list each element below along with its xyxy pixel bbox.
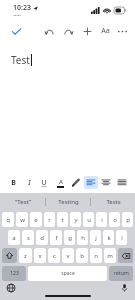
button[interactable]: y: [70, 212, 81, 227]
staticText: i: [101, 216, 103, 224]
staticText: x: [38, 252, 42, 260]
staticText: c: [53, 252, 56, 260]
staticText: A: [59, 178, 63, 186]
button[interactable]: k: [103, 230, 114, 245]
button[interactable]: Underline: [37, 176, 51, 189]
staticText: f: [55, 234, 58, 242]
staticText: U: [41, 178, 47, 188]
button[interactable]: space: [28, 266, 107, 281]
button[interactable]: r: [44, 212, 55, 227]
button[interactable]: Highlight: [68, 176, 82, 189]
button[interactable]: n: [90, 248, 102, 263]
staticText: Test: [11, 53, 30, 67]
staticText: Tests: [106, 198, 121, 206]
staticText: return: [114, 270, 129, 277]
button[interactable]: “Test”: [0, 193, 45, 210]
button[interactable]: Tests: [91, 193, 135, 210]
staticText: “Test”: [15, 198, 31, 206]
button[interactable]: List: [115, 176, 129, 189]
button[interactable]: h: [77, 230, 88, 245]
staticText: e: [34, 216, 38, 224]
button[interactable]: Text color: [53, 176, 67, 189]
button[interactable]: b: [76, 248, 88, 263]
button[interactable]: c: [48, 248, 60, 263]
button[interactable]: z: [19, 248, 32, 263]
button[interactable]: Insert: [79, 23, 95, 39]
staticText: s: [27, 234, 30, 242]
button[interactable]: Switch keyboard: [5, 282, 16, 293]
staticText: z: [24, 252, 27, 260]
button[interactable]: Undo: [41, 23, 57, 39]
button[interactable]: w: [16, 212, 28, 227]
button[interactable]: Bold: [6, 176, 20, 189]
staticText: q: [6, 216, 10, 224]
button[interactable]: a: [8, 230, 20, 245]
staticText: b: [80, 252, 84, 260]
button[interactable]: Return: [109, 266, 133, 281]
button[interactable]: Testing: [46, 193, 90, 210]
button[interactable]: p: [122, 212, 133, 227]
staticText: 10:23: [13, 3, 31, 13]
button[interactable]: Align left: [84, 176, 98, 189]
button[interactable]: f: [50, 230, 62, 245]
staticText: l: [121, 234, 123, 242]
button[interactable]: l: [116, 230, 127, 245]
button[interactable]: i: [96, 212, 107, 227]
button[interactable]: j: [90, 230, 101, 245]
staticText: h: [81, 234, 85, 242]
staticText: m: [107, 252, 113, 260]
button[interactable]: Dictate: [119, 282, 130, 293]
button[interactable]: e: [30, 212, 42, 227]
staticText: k: [107, 234, 111, 242]
staticText: a: [12, 234, 16, 242]
button[interactable]: u: [83, 212, 94, 227]
button[interactable]: Numbers: [2, 266, 26, 281]
staticText: t: [61, 216, 64, 224]
button[interactable]: x: [34, 248, 46, 263]
staticText: space: [61, 270, 75, 277]
button[interactable]: Done: [8, 23, 24, 39]
button[interactable]: Test: [0, 42, 135, 172]
button[interactable]: Redo: [60, 23, 76, 39]
staticText: •••••: [13, 13, 21, 18]
button[interactable]: Shift: [2, 248, 17, 263]
button[interactable]: t: [57, 212, 68, 227]
staticText: p: [126, 216, 130, 224]
button[interactable]: s: [22, 230, 34, 245]
button[interactable]: g: [64, 230, 75, 245]
button[interactable]: v: [62, 248, 74, 263]
staticText: v: [66, 252, 70, 260]
button[interactable]: q: [2, 212, 14, 227]
staticText: o: [113, 216, 117, 224]
staticText: g: [68, 234, 72, 242]
staticText: Testing: [58, 198, 79, 206]
button[interactable]: Italic: [22, 176, 36, 189]
staticText: y: [74, 216, 78, 224]
button[interactable]: o: [109, 212, 120, 227]
staticText: u: [87, 216, 91, 224]
staticText: d: [40, 234, 44, 242]
staticText: r: [48, 216, 51, 224]
staticText: I: [28, 178, 31, 188]
button[interactable]: d: [36, 230, 48, 245]
button[interactable]: More options: [114, 23, 130, 39]
staticText: n: [94, 252, 98, 260]
staticText: B: [11, 178, 16, 188]
staticText: w: [20, 216, 25, 224]
button[interactable]: Format: [97, 23, 113, 39]
staticText: Aa: [101, 26, 110, 36]
button[interactable]: Align center: [99, 176, 113, 189]
button[interactable]: m: [104, 248, 116, 263]
staticText: j: [95, 234, 97, 242]
staticText: 123: [10, 270, 19, 277]
button[interactable]: Backspace: [118, 248, 133, 263]
